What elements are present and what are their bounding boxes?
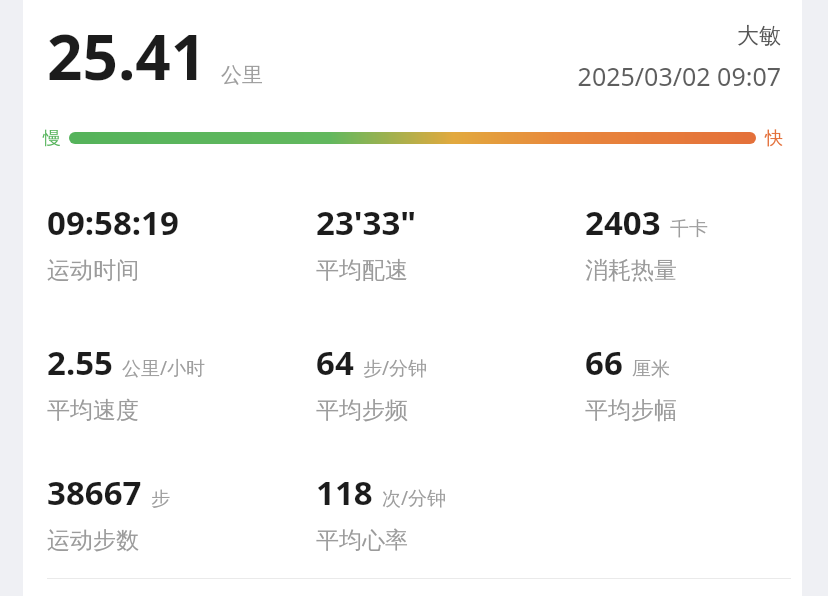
button[interactable]: 23'33" [316,200,425,285]
staticText: 25.41 [47,14,207,98]
staticText: 消耗热量 [585,256,677,285]
staticText: 2403 [585,200,661,245]
button[interactable]: 118 [316,470,455,555]
staticText: 23'33" [316,200,417,245]
button[interactable]: 64 [316,340,436,425]
staticText: 次/分钟 [382,485,447,511]
staticText: 平均步频 [316,396,408,425]
button[interactable]: 09:58:19 [47,200,187,285]
staticText: 慢 [43,127,61,150]
staticText: 快 [765,127,783,150]
staticText: 大敏 [737,22,781,50]
staticText: 运动时间 [47,256,139,285]
button[interactable]: 大敏 [403,22,781,93]
staticText: 118 [316,470,373,515]
staticText: 平均心率 [316,526,408,555]
staticText: 平均步幅 [585,396,677,425]
staticText: 平均速度 [47,396,139,425]
button[interactable]: 2.55 [47,340,214,425]
staticText: 公里/小时 [122,355,206,381]
staticText: 步/分钟 [363,355,428,381]
button[interactable]: 2403 [585,200,716,285]
staticText: 千卡 [670,217,708,241]
staticText: 64 [316,340,354,385]
button[interactable]: 25.41 [47,14,263,98]
staticText: 运动步数 [47,526,139,555]
staticText: 平均配速 [316,256,408,285]
button[interactable]: 66 [585,340,685,425]
staticText: 09:58:19 [47,200,179,245]
staticText: 2025/03/02 09:07 [577,59,781,93]
staticText: 2.55 [47,340,113,385]
button[interactable]: 38667 [47,470,178,555]
staticText: 38667 [47,470,142,515]
staticText: 公里 [221,62,263,88]
staticText: 66 [585,340,623,385]
staticText: 步 [151,487,170,511]
staticText: 厘米 [632,357,670,381]
